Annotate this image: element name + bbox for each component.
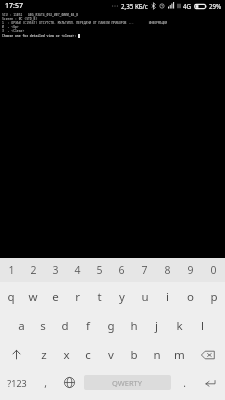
button[interactable]: Backspace [191,340,225,369]
button[interactable]: q [0,282,22,311]
button[interactable]: 7 [133,258,156,282]
button[interactable]: x [55,340,77,369]
button[interactable]: 9 [179,258,202,282]
staticText: 6 [118,263,125,277]
staticText: p [210,289,218,305]
staticText: 2,35 КБ/с [121,2,148,10]
staticText: 3 - <Clear> [2,29,25,33]
staticText: q [7,289,15,305]
staticText: Screen : 0C (STD_B) [2,17,38,21]
button[interactable]: k [168,311,191,340]
staticText: QWERTY [112,378,143,388]
button[interactable]: m [168,340,191,369]
button[interactable]: s [32,311,54,340]
button[interactable]: l [191,311,214,340]
button[interactable]: ?123 [0,369,34,396]
staticText: o [187,289,194,305]
staticText: w [28,289,38,305]
button[interactable]: QWERTY [84,375,171,390]
button[interactable]: 6 [110,258,133,282]
staticText: . [183,376,186,390]
staticText: 3 [52,263,59,277]
button[interactable]: r [66,282,88,311]
staticText: 0 - <Up> [2,25,19,29]
staticText: b [130,347,138,363]
button[interactable]: 3 [44,258,66,282]
button[interactable]: o [179,282,202,311]
staticText: 9 [187,263,194,277]
staticText: t [97,289,102,305]
staticText: 0 [210,263,217,277]
staticText: c [85,347,91,363]
staticText: x [63,347,70,363]
button[interactable]: , [34,369,56,396]
staticText: v [108,347,114,363]
button[interactable]: j [145,311,168,340]
button[interactable]: h [122,311,145,340]
staticText: 29% [209,2,222,10]
staticText: 5 [96,263,103,277]
button[interactable]: Enter [195,369,225,396]
button[interactable]: 0 [202,258,225,282]
staticText: d [61,318,69,334]
button[interactable]: i [156,282,179,311]
button[interactable]: n [145,340,168,369]
button[interactable]: e [44,282,66,311]
staticText: 8 [164,263,171,277]
staticText: 2 [30,263,37,277]
button[interactable]: 1 [0,258,22,282]
button[interactable]: 8 [156,258,179,282]
staticText: u [141,289,149,305]
staticText: a [18,318,25,334]
staticText: ?123 [7,377,27,389]
staticText: f [86,318,90,334]
button[interactable]: g [99,311,122,340]
staticText: 17:57 [5,1,23,11]
staticText: e [52,289,59,305]
button[interactable]: z [33,340,55,369]
staticText: 1 [8,263,15,277]
staticText: m [174,347,185,363]
staticText: z [41,347,47,363]
button[interactable]: 2 [22,258,44,282]
button[interactable]: . [173,369,195,396]
staticText: n [153,347,161,363]
button[interactable]: Shift [0,340,33,369]
button[interactable]: 4 [66,258,88,282]
staticText: l [201,318,204,334]
button[interactable]: t [88,282,110,311]
button[interactable]: v [99,340,122,369]
staticText: 4 [74,263,81,277]
button[interactable]: Change language [56,369,82,396]
button[interactable]: b [122,340,145,369]
staticText: g [107,318,115,334]
staticText: i [166,289,169,305]
button[interactable]: c [77,340,99,369]
staticText: SCU : 11051 ABG_R3AT4_092_007_0000_04_B [2,13,79,17]
button[interactable]: p [202,282,225,311]
button[interactable]: y [110,282,133,311]
button[interactable]: a [10,311,32,340]
staticText: j [155,318,158,334]
staticText: Choose one for detailed view or <clear>: [2,34,77,38]
staticText: k [176,318,183,334]
button[interactable]: d [54,311,76,340]
button[interactable]: 5 [88,258,110,282]
staticText: 1 : ОРЭАИ (C19567) ОТСУТСТВ. МУЛЬТИПЛ. П… [2,21,168,25]
staticText: 7 [141,263,148,277]
staticText: s [40,318,46,334]
button[interactable]: w [22,282,44,311]
staticText: , [44,376,47,390]
staticText: r [75,289,80,305]
staticText: 4G [183,2,192,10]
button[interactable]: u [133,282,156,311]
button[interactable]: f [76,311,99,340]
staticText: y [119,289,125,305]
staticText: h [130,318,138,334]
